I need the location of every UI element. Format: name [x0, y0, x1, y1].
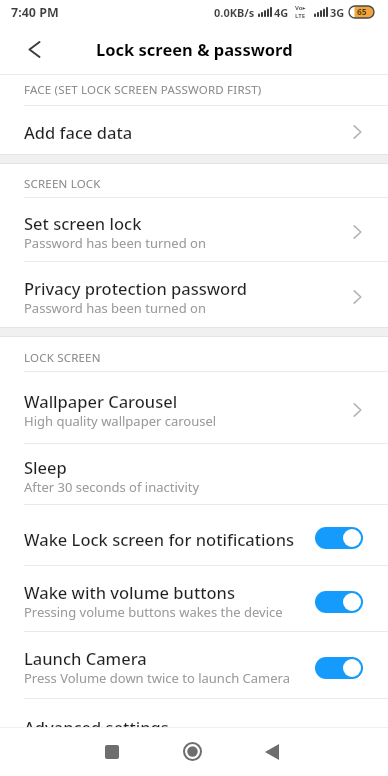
staticText: FACE (SET LOCK SCREEN PASSWORD FIRST): [24, 82, 262, 98]
staticText: 0.0KB/s: [214, 5, 255, 20]
staticText: LTE: [295, 12, 306, 20]
staticText: Lock screen & password: [96, 38, 293, 60]
button[interactable]: Wallpaper Carousel: [0, 372, 388, 443]
staticText: 65: [357, 6, 367, 18]
button[interactable]: [83, 727, 141, 776]
button[interactable]: [243, 727, 301, 776]
staticText: Add face data: [24, 121, 133, 143]
staticText: Vo▸: [295, 4, 306, 12]
staticText: Wake Lock screen for notifications: [24, 528, 295, 550]
button[interactable]: Advanced settings: [0, 699, 388, 727]
staticText: Press Volume down twice to launch Camera: [24, 669, 290, 687]
staticText: Password has been turned on: [24, 234, 206, 252]
staticText: Sleep: [24, 456, 67, 478]
staticText: Password has been turned on: [24, 299, 206, 317]
button[interactable]: [12, 24, 56, 74]
staticText: Wallpaper Carousel: [24, 390, 178, 412]
staticText: Advanced settings: [24, 716, 169, 727]
button[interactable]: Add face data: [0, 106, 388, 154]
staticText: 7:40 PM: [11, 4, 59, 21]
staticText: After 30 seconds of inactivity: [24, 478, 200, 496]
staticText: 4G: [274, 5, 289, 20]
staticText: Privacy protection password: [24, 277, 248, 299]
button[interactable]: Wake with volume buttons: [0, 566, 388, 631]
staticText: 3G: [330, 5, 345, 20]
button[interactable]: Set screen lock: [0, 198, 388, 261]
staticText: Pressing volume buttons wakes the device: [24, 603, 283, 621]
button[interactable]: Wake Lock screen for notifications: [0, 505, 388, 565]
button[interactable]: [163, 727, 221, 776]
button[interactable]: Sleep: [0, 444, 388, 504]
staticText: LOCK SCREEN: [24, 350, 101, 366]
staticText: Launch Camera: [24, 647, 147, 669]
button[interactable]: Launch Camera: [0, 632, 388, 698]
button[interactable]: Privacy protection password: [0, 262, 388, 327]
staticText: Set screen lock: [24, 212, 142, 234]
staticText: Wake with volume buttons: [24, 581, 235, 603]
staticText: High quality wallpaper carousel: [24, 412, 217, 430]
staticText: SCREEN LOCK: [24, 176, 101, 192]
